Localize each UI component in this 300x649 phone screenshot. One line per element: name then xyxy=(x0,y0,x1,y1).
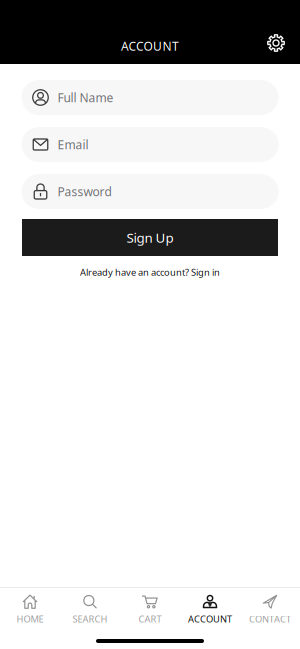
staticText: CART xyxy=(138,613,161,625)
button[interactable]: Sign Up xyxy=(0,219,300,256)
staticText: CONTACT xyxy=(249,613,291,625)
staticText: SEARCH xyxy=(72,613,107,625)
button[interactable]: Settings xyxy=(267,37,300,54)
button[interactable]: Already have an account? Sign in xyxy=(80,266,220,278)
staticText: HOME xyxy=(16,613,43,625)
button[interactable]: ACCOUNT xyxy=(180,595,240,625)
staticText: Email xyxy=(57,136,88,152)
staticText: ACCOUNT xyxy=(121,38,179,54)
staticText: ACCOUNT xyxy=(188,613,232,625)
staticText: Sign Up xyxy=(126,229,173,246)
staticText: Password xyxy=(57,183,111,199)
staticText: Already have an account? Sign in xyxy=(80,266,220,278)
button[interactable]: HOME xyxy=(0,595,60,625)
button[interactable]: CONTACT xyxy=(240,595,300,625)
button[interactable]: SEARCH xyxy=(60,595,120,625)
button[interactable]: CART xyxy=(120,595,180,625)
staticText: Full Name xyxy=(57,89,113,105)
